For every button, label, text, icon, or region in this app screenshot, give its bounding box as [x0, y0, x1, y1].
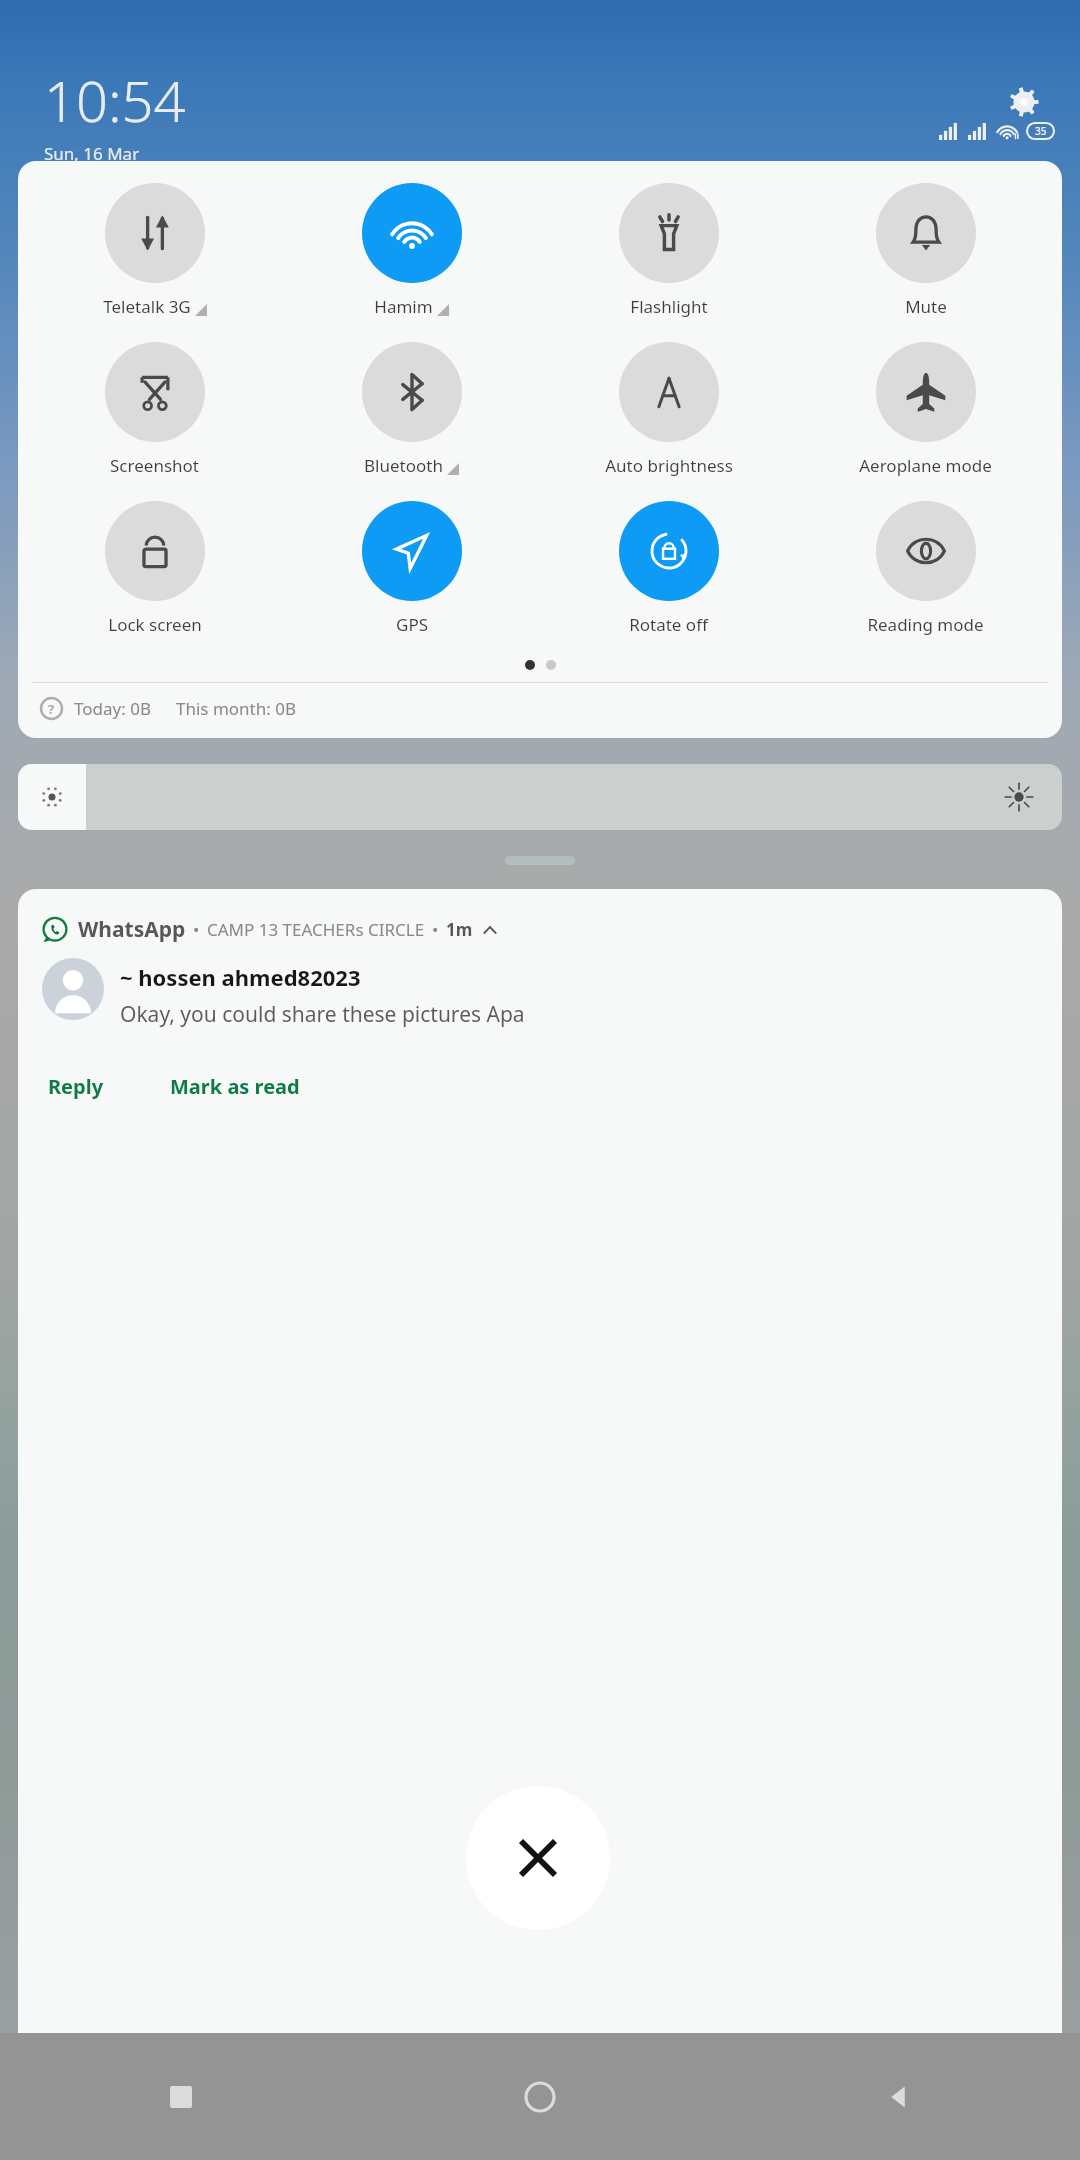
- staticText: •: [432, 918, 439, 941]
- staticText: Auto brightness: [605, 454, 733, 477]
- staticText: Aeroplane mode: [859, 454, 992, 477]
- button[interactable]: Reply: [42, 1067, 110, 1106]
- staticText: Flashlight: [630, 295, 708, 318]
- button[interactable]: GPS: [283, 501, 540, 636]
- button[interactable]: Flashlight: [540, 183, 797, 318]
- staticText: Teletalk 3G: [103, 295, 191, 318]
- staticText: Screenshot: [110, 454, 199, 477]
- staticText: ?: [48, 700, 55, 718]
- button[interactable]: WhatsApp: [18, 915, 1062, 944]
- button[interactable]: Lock screen: [26, 501, 283, 636]
- button[interactable]: Rotate off: [540, 501, 797, 636]
- staticText: •: [193, 918, 200, 941]
- staticText: ~ hossen ahmed82023: [120, 962, 361, 992]
- button[interactable]: Mark as read: [164, 1067, 306, 1106]
- staticText: This month: 0B: [176, 697, 296, 720]
- staticText: Mute: [905, 295, 947, 318]
- button[interactable]: Reading mode: [797, 501, 1054, 636]
- button[interactable]: Teletalk 3G: [26, 183, 283, 318]
- button[interactable]: Back: [868, 2066, 930, 2128]
- button[interactable]: ?: [18, 683, 1062, 738]
- staticText: WhatsApp: [78, 915, 186, 944]
- button[interactable]: Mute: [797, 183, 1054, 318]
- staticText: 1m: [446, 918, 473, 941]
- staticText: GPS: [396, 613, 428, 636]
- staticText: Lock screen: [108, 613, 202, 636]
- staticText: Reading mode: [867, 613, 984, 636]
- button[interactable]: Hamim: [283, 183, 540, 318]
- staticText: 10:54: [44, 62, 186, 138]
- staticText: Hamim: [374, 295, 433, 318]
- button[interactable]: Bluetooth: [283, 342, 540, 477]
- staticText: CAMP 13 TEACHERs CIRCLE: [207, 918, 425, 941]
- button[interactable]: Auto brightness: [540, 342, 797, 477]
- button[interactable]: Home: [509, 2066, 571, 2128]
- staticText: Rotate off: [629, 613, 708, 636]
- staticText: Mark as read: [170, 1073, 300, 1100]
- button[interactable]: Screenshot: [26, 342, 283, 477]
- staticText: Today: 0B: [74, 697, 151, 720]
- button[interactable]: Dismiss notification: [466, 1786, 610, 1930]
- button[interactable]: Aeroplane mode: [797, 342, 1054, 477]
- staticText: Reply: [48, 1073, 104, 1100]
- button[interactable]: Recents: [150, 2066, 212, 2128]
- staticText: Sun, 16 Mar: [44, 142, 140, 165]
- button[interactable]: Settings: [1000, 78, 1048, 126]
- staticText: Bluetooth: [364, 454, 443, 477]
- button[interactable]: Brightness: [18, 764, 1062, 830]
- staticText: Okay, you could share these pictures Apa: [120, 1000, 525, 1029]
- staticText: 35: [1035, 124, 1047, 138]
